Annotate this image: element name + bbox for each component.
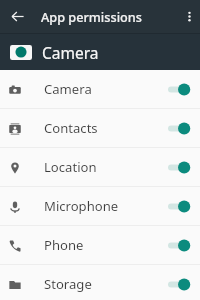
staticText: Location xyxy=(44,158,97,176)
staticText: Storage xyxy=(44,275,92,293)
button[interactable]: Location xyxy=(0,148,200,187)
button[interactable]: More options xyxy=(178,0,200,32)
staticText: Contacts xyxy=(44,119,98,137)
button[interactable]: Camera xyxy=(0,70,200,109)
button[interactable]: Contacts permission, on xyxy=(158,109,200,148)
staticText: Microphone xyxy=(44,197,119,215)
staticText: Camera xyxy=(42,42,99,63)
button[interactable]: Navigate up xyxy=(0,0,34,32)
button[interactable]: Storage xyxy=(0,265,200,300)
button[interactable]: Phone permission, on xyxy=(158,226,200,265)
button[interactable]: Camera xyxy=(0,34,200,70)
button[interactable]: Camera permission, on xyxy=(158,70,200,109)
staticText: App permissions xyxy=(41,8,142,25)
button[interactable]: Contacts xyxy=(0,109,200,148)
button[interactable]: Microphone permission, on xyxy=(158,187,200,226)
button[interactable]: Phone xyxy=(0,226,200,265)
button[interactable]: Microphone xyxy=(0,187,200,226)
button[interactable]: Location permission, on xyxy=(158,148,200,187)
staticText: Phone xyxy=(44,236,84,254)
button[interactable]: Storage permission, on xyxy=(158,265,200,300)
staticText: Camera xyxy=(44,80,92,98)
